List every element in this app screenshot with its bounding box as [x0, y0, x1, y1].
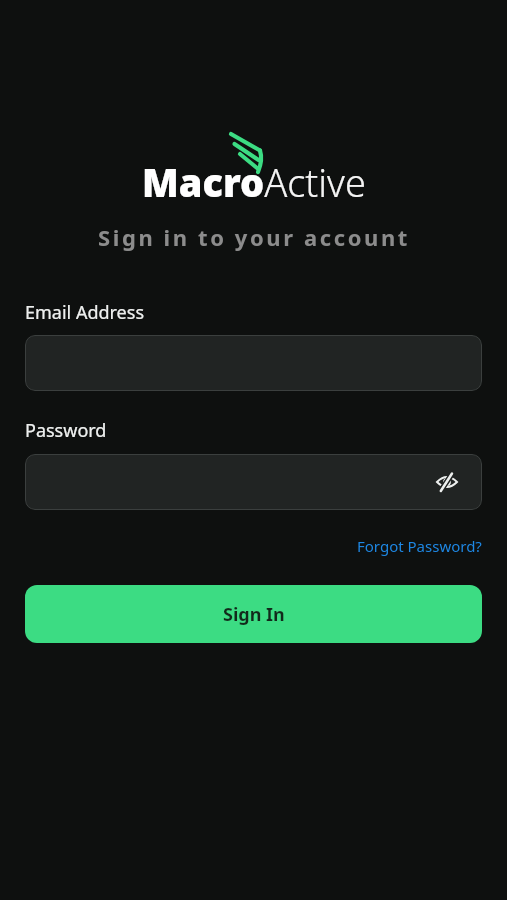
staticText: Password — [25, 418, 107, 443]
staticText: Sign In — [223, 602, 285, 627]
staticText: Forgot Password? — [357, 536, 482, 556]
button[interactable] — [25, 454, 482, 510]
staticText: MacroActive — [142, 156, 366, 208]
staticText: Sign in to your account — [98, 222, 410, 252]
button[interactable]: Forgot Password? — [357, 536, 482, 556]
button[interactable]: Sign In — [25, 585, 482, 643]
button[interactable] — [25, 335, 482, 391]
staticText: Email Address — [25, 300, 145, 325]
